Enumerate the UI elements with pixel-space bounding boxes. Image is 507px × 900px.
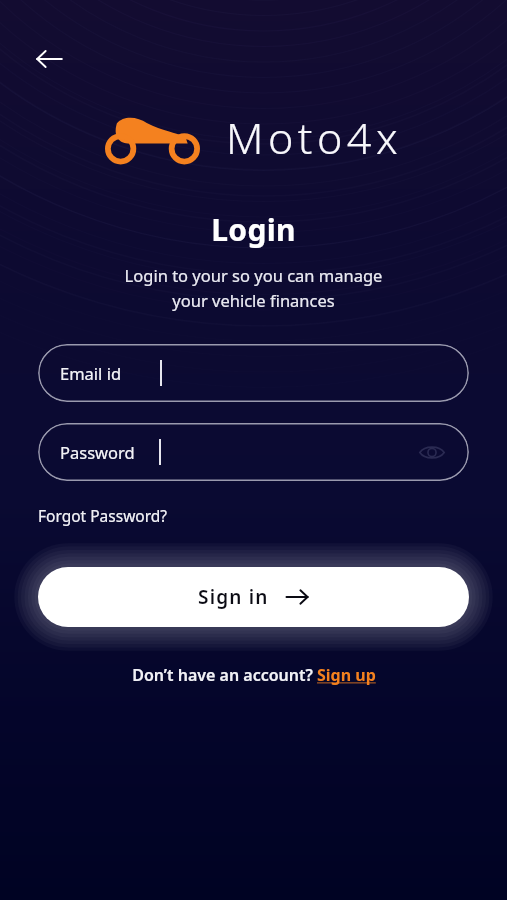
button[interactable]: Forgot Password? (38, 503, 168, 528)
button[interactable]: Email id (38, 344, 469, 402)
button[interactable]: Don’t have an account? Sign up (128, 660, 380, 690)
staticText: Login (0, 209, 507, 250)
button[interactable]: Password (38, 423, 469, 481)
button[interactable]: Sign in (38, 567, 469, 627)
staticText: Don’t have an account? Sign up (132, 664, 376, 686)
staticText: Login to your so you can manage your veh… (48, 264, 459, 312)
staticText: Email id (60, 362, 122, 384)
staticText: Sign in (198, 584, 269, 610)
button[interactable]: Back (28, 38, 70, 80)
staticText: Moto4x (226, 108, 403, 167)
staticText: Forgot Password? (38, 505, 168, 526)
staticText: Password (60, 441, 135, 463)
button[interactable]: Show password (417, 437, 447, 467)
